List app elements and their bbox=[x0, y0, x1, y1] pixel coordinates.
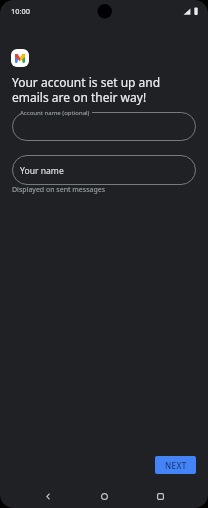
button[interactable]: Recent apps bbox=[147, 485, 173, 508]
button[interactable]: NEXT bbox=[155, 456, 196, 474]
staticText: Your account is set up and emails are on… bbox=[12, 74, 182, 105]
staticText: NEXT bbox=[165, 460, 187, 471]
button[interactable]: Back bbox=[35, 485, 61, 508]
staticText: 10:00 bbox=[11, 6, 30, 16]
staticText: Account name (optional) bbox=[20, 109, 90, 117]
button[interactable]: Home bbox=[91, 485, 117, 508]
staticText: Your name bbox=[20, 165, 64, 177]
staticText: Displayed on sent messages bbox=[12, 185, 106, 195]
button[interactable]: Your name bbox=[12, 155, 196, 185]
button[interactable]: Account name (optional) bbox=[12, 112, 196, 141]
